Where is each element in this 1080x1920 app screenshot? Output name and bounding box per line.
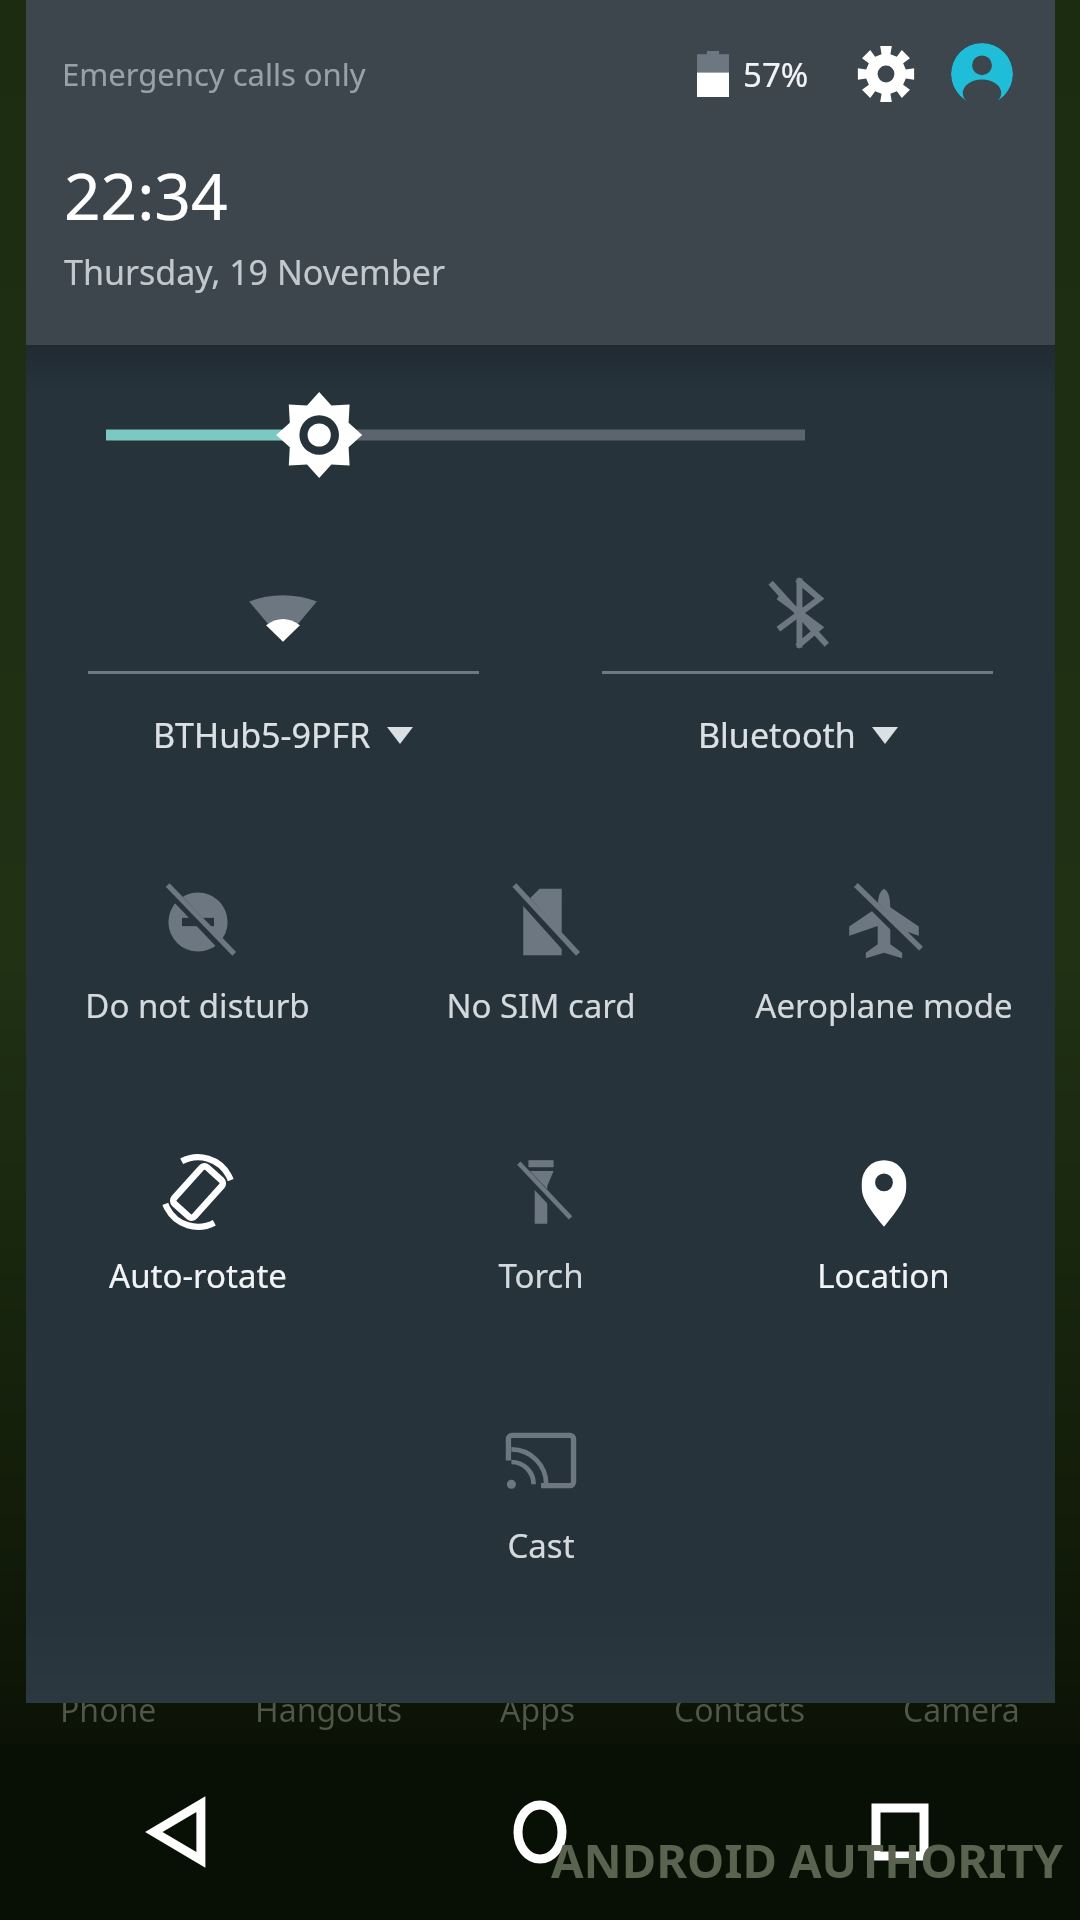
- staticText: Location: [817, 1253, 950, 1298]
- staticText: Thursday, 19 November: [64, 249, 446, 295]
- button[interactable]: Hangouts: [255, 1688, 403, 1732]
- button[interactable]: Camera: [903, 1688, 1020, 1732]
- staticText: Bluetooth: [698, 712, 856, 758]
- button[interactable]: Torch: [369, 1131, 712, 1339]
- button[interactable]: Settings: [849, 37, 923, 111]
- staticText: Phone: [60, 1688, 157, 1732]
- button[interactable]: Bluetooth: [540, 555, 1055, 803]
- staticText: 57%: [743, 52, 809, 97]
- staticText: ANDROID AUTHORITY: [551, 1828, 1064, 1892]
- button[interactable]: User profile: [945, 37, 1019, 111]
- button[interactable]: No SIM card: [369, 861, 712, 1069]
- button[interactable]: Do not disturb: [26, 861, 369, 1069]
- staticText: Emergency calls only: [62, 53, 366, 95]
- staticText: Torch: [498, 1253, 584, 1298]
- staticText: Contacts: [674, 1688, 806, 1732]
- button[interactable]: Brightness: [26, 389, 1055, 481]
- staticText: 22:34: [64, 152, 228, 239]
- staticText: Cast: [507, 1523, 575, 1568]
- button[interactable]: Back: [0, 1744, 360, 1920]
- button[interactable]: Recent apps: [720, 1744, 1080, 1920]
- button[interactable]: Aeroplane mode: [712, 861, 1055, 1069]
- button[interactable]: Phone: [60, 1688, 157, 1732]
- staticText: Aeroplane mode: [755, 983, 1013, 1028]
- staticText: No SIM card: [446, 983, 636, 1028]
- button[interactable]: Apps: [500, 1688, 576, 1732]
- button[interactable]: BTHub5-9PFR: [26, 555, 540, 803]
- staticText: Do not disturb: [85, 983, 310, 1028]
- button[interactable]: Contacts: [674, 1688, 806, 1732]
- staticText: BTHub5-9PFR: [153, 712, 371, 758]
- staticText: Hangouts: [255, 1688, 403, 1732]
- button[interactable]: Home: [360, 1744, 720, 1920]
- button[interactable]: Cast: [369, 1401, 712, 1609]
- button[interactable]: Location: [712, 1131, 1055, 1339]
- button[interactable]: Auto-rotate: [26, 1131, 369, 1339]
- staticText: Auto-rotate: [109, 1253, 287, 1298]
- staticText: Apps: [500, 1688, 576, 1732]
- staticText: Camera: [903, 1688, 1020, 1732]
